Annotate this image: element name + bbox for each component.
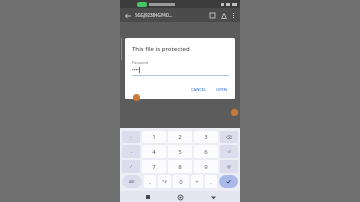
staticText: 9: [204, 163, 208, 171]
staticText: ⏎: [227, 149, 231, 154]
button[interactable]: 8: [168, 160, 192, 173]
button[interactable]: 4: [142, 145, 166, 158]
staticText: ⌫: [226, 135, 232, 140]
button[interactable]: More options: [229, 11, 238, 20]
button[interactable]: CANCEL: [189, 85, 209, 94]
button[interactable]: +: [191, 175, 203, 188]
button[interactable]: Back: [122, 10, 133, 21]
staticText: 1: [152, 133, 156, 141]
staticText: .: [210, 178, 212, 186]
staticText: 8: [178, 163, 182, 171]
button[interactable]: 0: [173, 175, 189, 188]
button[interactable]: 6: [194, 145, 218, 158]
button[interactable]: Done: [219, 175, 238, 188]
button[interactable]: Share: [218, 10, 229, 21]
staticText: Password: [132, 60, 149, 65]
staticText: @: [227, 164, 231, 170]
button[interactable]: @: [220, 160, 238, 173]
staticText: CANCEL: [191, 87, 207, 92]
staticText: 0: [179, 178, 183, 186]
button[interactable]: Home: [175, 192, 185, 202]
staticText: SGGJ92384GY4O...: [135, 12, 207, 18]
button[interactable]: 3: [194, 131, 218, 143]
button[interactable]: OPEN: [214, 85, 229, 94]
button[interactable]: ⏎: [220, 145, 238, 158]
staticText: 6: [204, 148, 208, 156]
staticText: 5: [178, 148, 182, 156]
button[interactable]: ABC: [122, 175, 142, 188]
staticText: OPEN: [216, 87, 227, 92]
button[interactable]: *#: [158, 175, 171, 188]
button[interactable]: 2: [168, 131, 192, 143]
staticText: ABC: [129, 180, 136, 184]
button[interactable]: Back: [208, 192, 218, 202]
button[interactable]: 9: [194, 160, 218, 173]
staticText: This file is protected: [132, 45, 190, 53]
staticText: /: [130, 164, 132, 170]
button[interactable]: .: [205, 175, 217, 188]
button[interactable]: ,: [144, 175, 156, 188]
staticText: 7: [152, 163, 156, 171]
staticText: 4: [152, 148, 156, 156]
button[interactable]: Recent apps: [143, 192, 153, 202]
staticText: 3: [204, 133, 208, 141]
staticText: +: [195, 178, 199, 186]
staticText: *#: [162, 179, 167, 184]
button[interactable]: 1: [142, 131, 166, 143]
staticText: ••••: [132, 67, 139, 73]
staticText: -: [130, 134, 132, 140]
button[interactable]: 5: [168, 145, 192, 158]
button[interactable]: 7: [142, 160, 166, 173]
button[interactable]: Bookmark: [207, 10, 218, 21]
staticText: ,: [149, 178, 151, 186]
button[interactable]: ⌫: [220, 131, 238, 143]
button[interactable]: /: [122, 160, 140, 173]
staticText: 2: [178, 133, 182, 141]
staticText: –: [130, 149, 133, 155]
